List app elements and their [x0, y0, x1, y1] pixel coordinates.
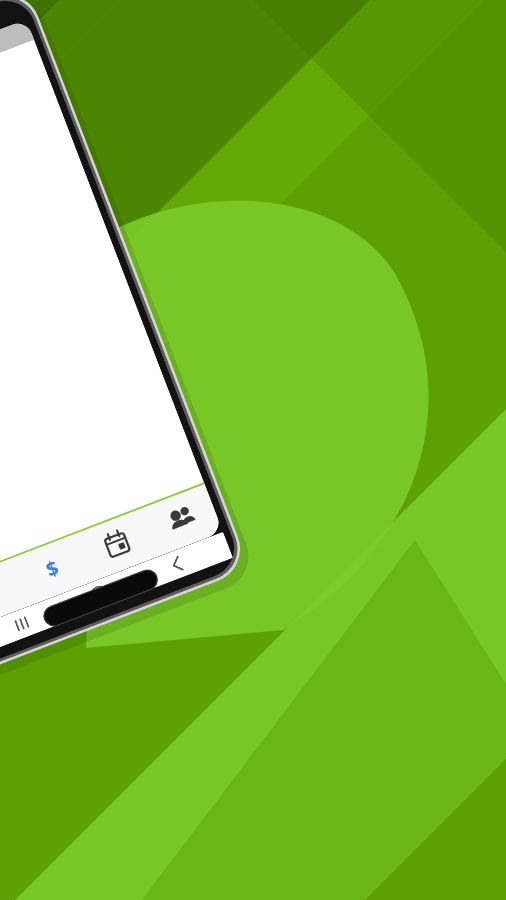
button[interactable]: Demo 0 Leads: [16, 176, 112, 248]
button[interactable]: Search: [14, 74, 58, 118]
button[interactable]: Contacts: [218, 614, 274, 670]
button[interactable]: Calendar: [154, 636, 210, 692]
button[interactable]: Filter: [24, 116, 68, 160]
